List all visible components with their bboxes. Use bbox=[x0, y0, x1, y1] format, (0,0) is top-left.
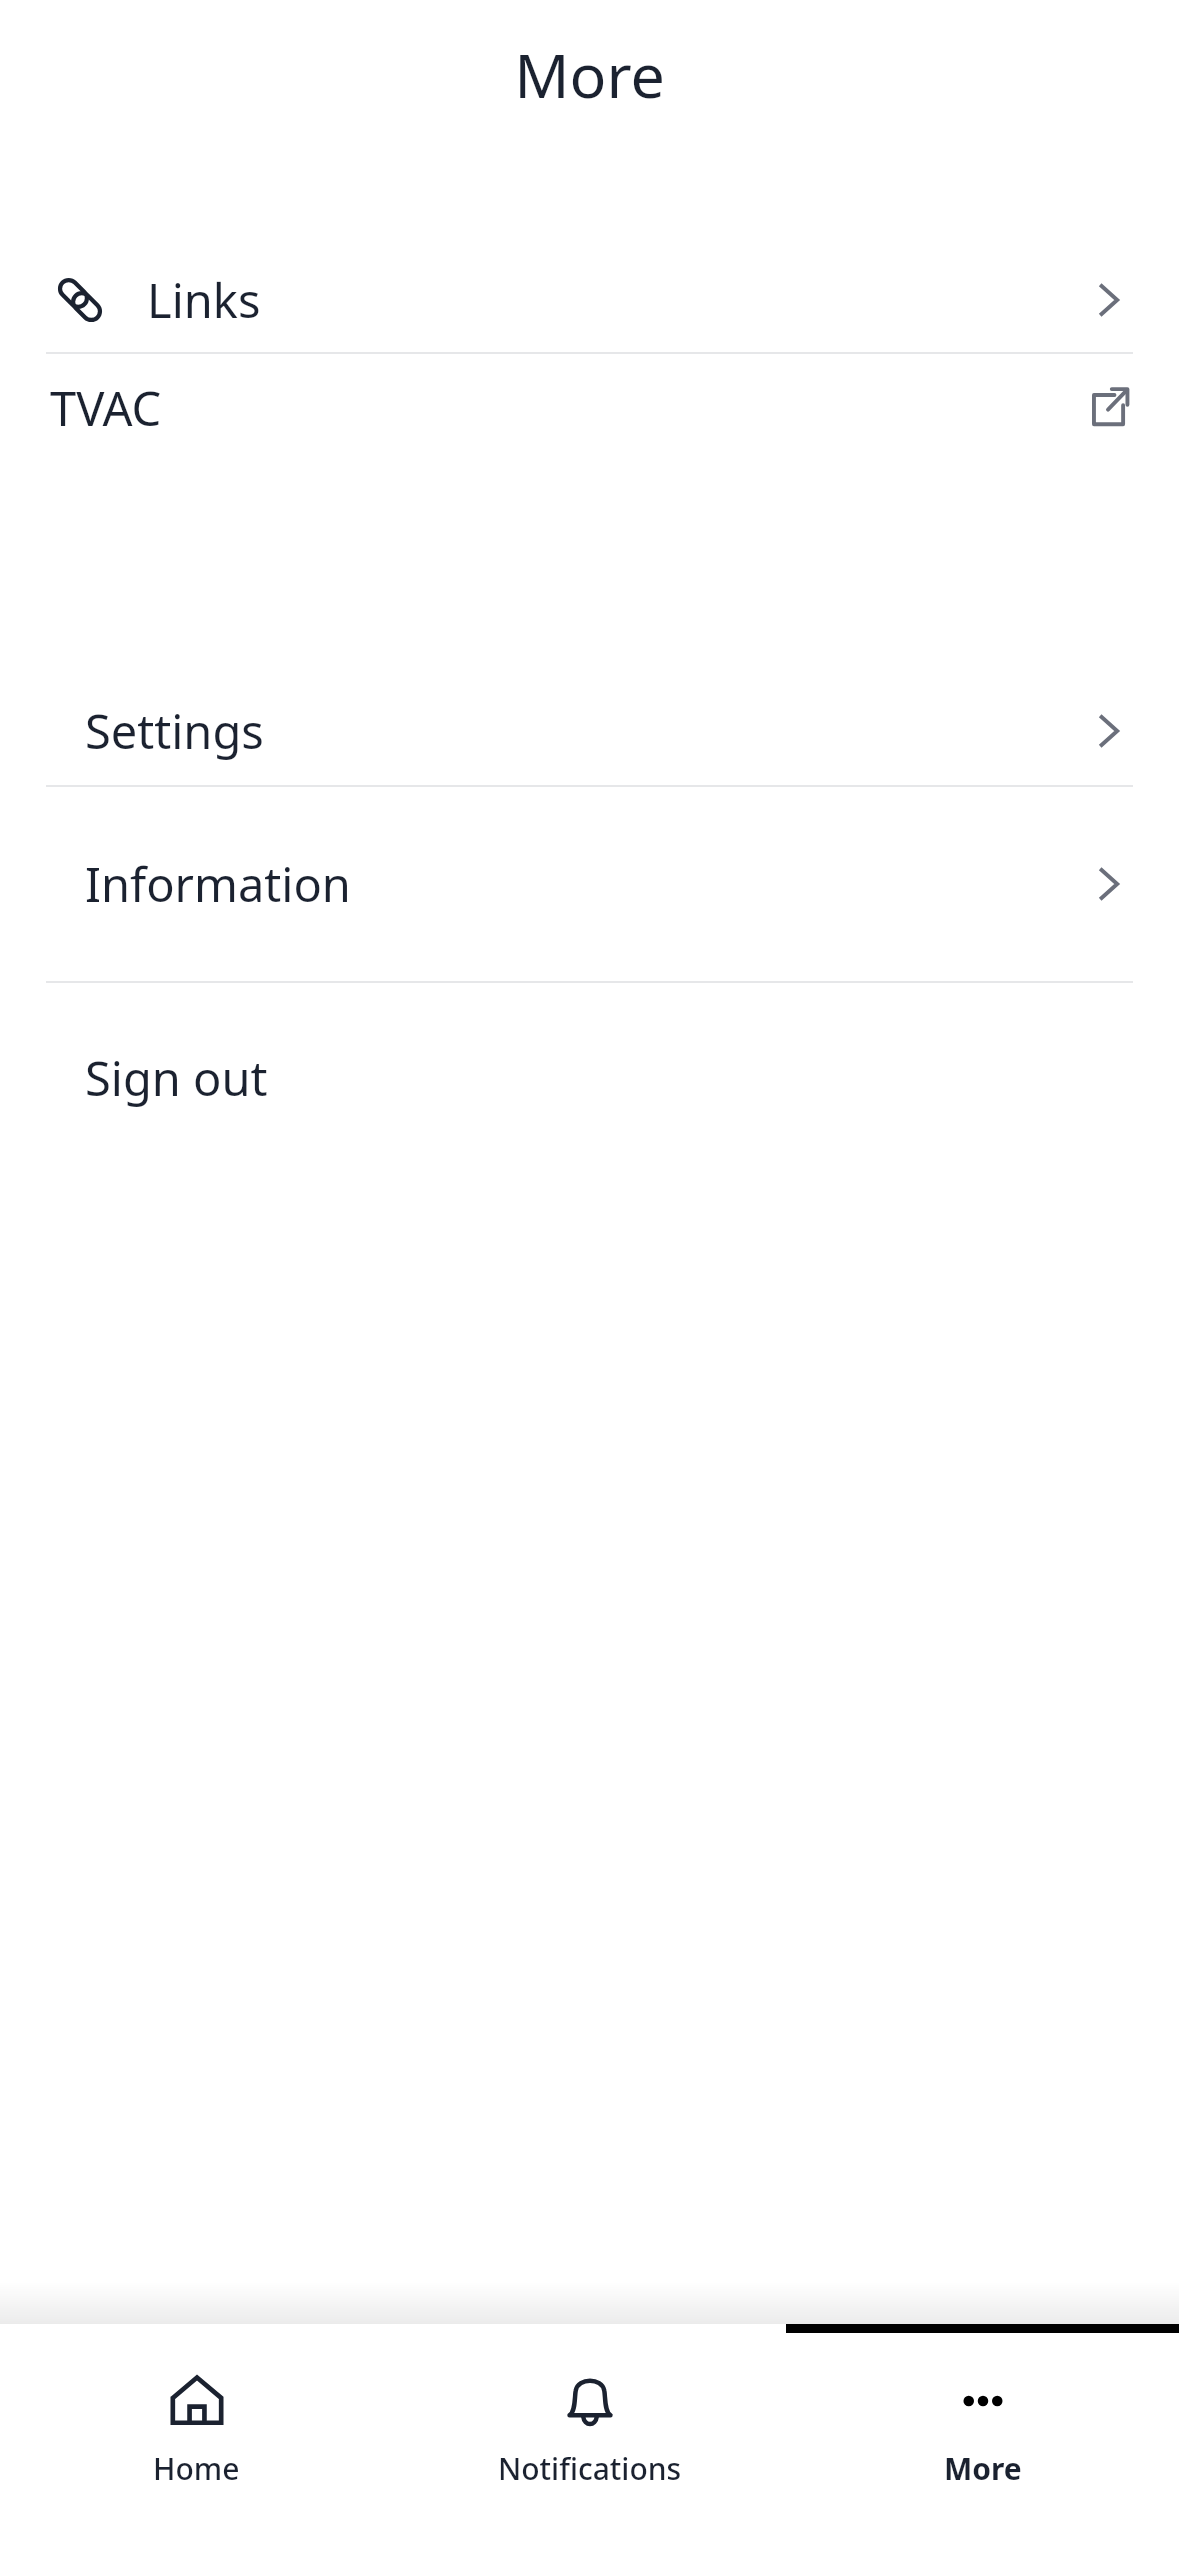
button[interactable]: Notifications bbox=[393, 2366, 786, 2493]
staticText: Home bbox=[153, 2448, 240, 2489]
button[interactable]: TVAC bbox=[0, 354, 1179, 462]
other: Open TVAC externally bbox=[1081, 381, 1135, 435]
staticText: Information bbox=[85, 852, 351, 916]
button[interactable]: Links bbox=[0, 248, 1179, 352]
staticText: TVAC bbox=[50, 376, 162, 440]
staticText: More bbox=[944, 2448, 1022, 2489]
button[interactable]: Information bbox=[0, 787, 1179, 981]
button[interactable]: More bbox=[786, 2366, 1179, 2493]
staticText: Sign out bbox=[85, 1046, 268, 1110]
button[interactable]: Home bbox=[0, 2366, 393, 2493]
staticText: Settings bbox=[85, 699, 264, 763]
button[interactable]: Sign out bbox=[0, 983, 1179, 1173]
button[interactable]: Settings bbox=[0, 677, 1179, 785]
staticText: More bbox=[514, 33, 665, 116]
staticText: Notifications bbox=[498, 2448, 682, 2489]
staticText: Links bbox=[147, 268, 261, 332]
